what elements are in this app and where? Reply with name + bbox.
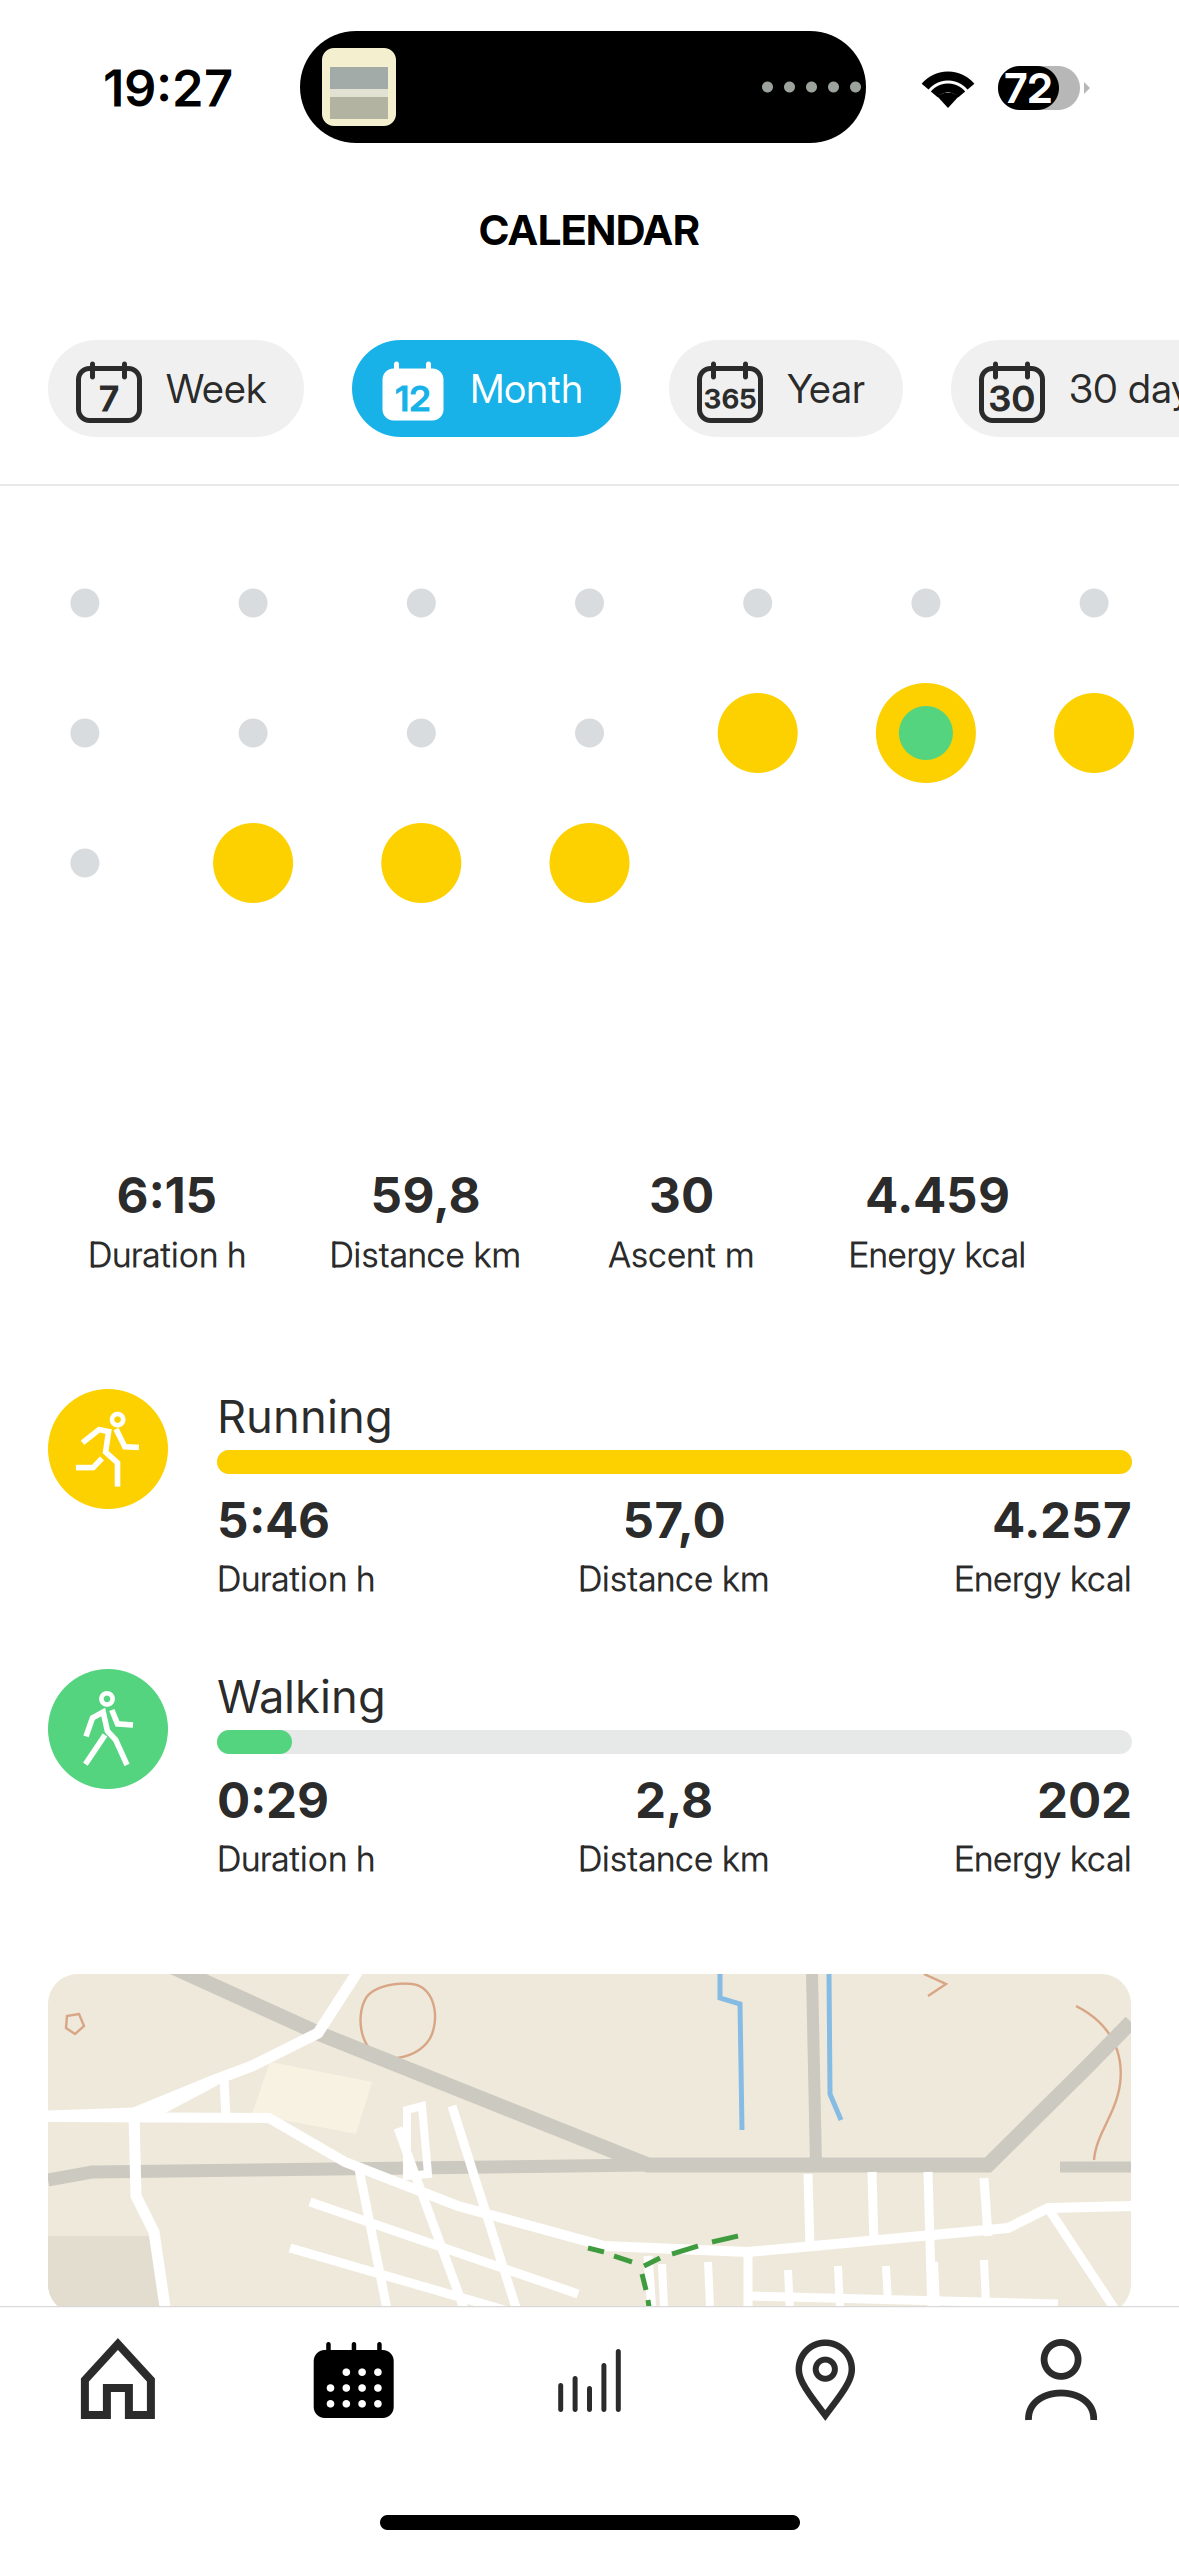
staticText: Week [166,364,266,413]
staticText: 4.459 [865,1165,1010,1225]
staticText: Distance km [578,1838,770,1880]
staticText: 6:15 [116,1165,217,1225]
button[interactable]: 365 [669,340,903,437]
button[interactable]: 30 [951,340,1179,437]
staticText: 59,8 [370,1165,480,1225]
staticText: 12 [395,377,431,420]
staticText: Duration h [88,1234,246,1276]
staticText: Ascent m [608,1234,755,1276]
staticText: 30 days [1069,364,1179,413]
staticText: 30 [649,1165,714,1225]
staticText: 30 [988,377,1035,420]
staticText: 202 [1037,1770,1132,1830]
staticText: Duration h [217,1558,375,1600]
button[interactable]: Profile [943,2307,1179,2452]
staticText: 72 [1004,63,1052,113]
staticText: Year [787,364,865,413]
button[interactable]: Places [707,2307,943,2452]
staticText: Energy kcal [954,1558,1132,1600]
staticText: Energy kcal [848,1234,1026,1276]
staticText: Month [470,364,583,413]
staticText: CALENDAR [479,205,700,255]
staticText: Distance km [329,1234,521,1276]
staticText: 2,8 [635,1770,713,1830]
staticText: 0:29 [217,1770,329,1830]
staticText: 4.257 [992,1490,1132,1550]
staticText: 5:46 [217,1490,330,1550]
button[interactable]: Home [0,2307,236,2452]
button[interactable]: Calendar [236,2307,472,2452]
staticText: 19:27 [103,57,233,119]
button[interactable]: 12 [352,340,621,437]
staticText: Walking [217,1669,386,1724]
staticText: Duration h [217,1838,375,1880]
button[interactable]: Statistics [472,2307,707,2452]
staticText: 57,0 [622,1490,725,1550]
staticText: 365 [703,382,756,415]
staticText: 7 [99,377,119,420]
staticText: Distance km [578,1558,770,1600]
button[interactable]: 7 [48,340,304,437]
staticText: Running [217,1389,393,1444]
staticText: Energy kcal [954,1838,1132,1880]
